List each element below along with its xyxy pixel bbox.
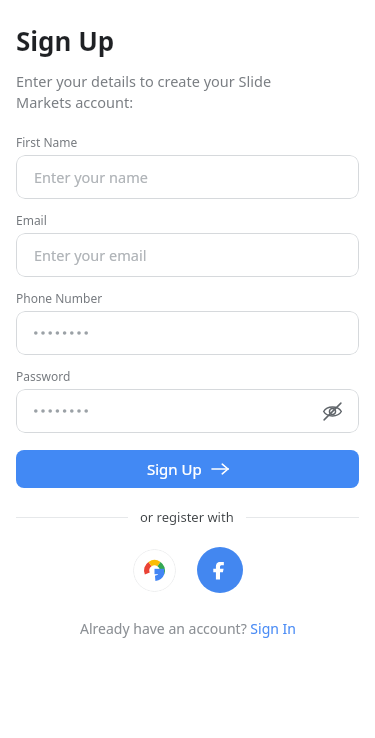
staticText: Phone Number [16,290,103,306]
staticText: Enter your name [34,167,148,187]
button[interactable]: Enter your email [16,233,359,277]
staticText: Email [16,212,47,228]
button[interactable]: Sign up with Facebook [197,547,243,593]
button[interactable]: Sign Up [16,450,359,488]
button[interactable]: Already have an account? Sign In [80,619,296,638]
staticText: or register with [140,508,234,526]
staticText: Password [16,368,71,384]
button[interactable]: Show password [319,398,345,424]
staticText: Sign Up [147,459,202,479]
staticText: First Name [16,134,78,150]
button[interactable]: Show password [16,389,359,433]
staticText: Enter your email [34,245,147,265]
staticText: Sign Up [16,23,115,58]
staticText: Enter your details to create your Slide … [16,71,317,113]
button[interactable]: Enter your name [16,155,359,199]
button[interactable] [16,311,359,355]
button[interactable]: Sign up with Google [133,549,176,592]
